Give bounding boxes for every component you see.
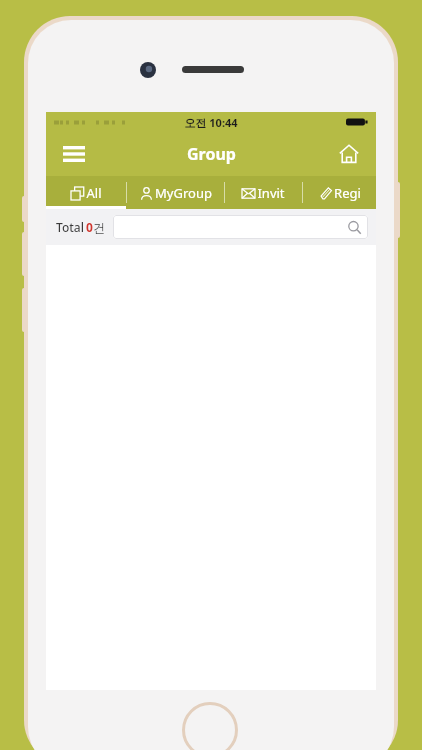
button[interactable]: MyGroup [127,176,224,209]
button[interactable]: Home [332,137,366,171]
staticText: 0 [86,219,93,235]
staticText: Group [187,143,236,165]
staticText: Invit [257,184,285,202]
staticText: MyGroup [155,184,212,202]
staticText: 오전 10:44 [184,115,238,130]
button[interactable]: Menu [56,136,92,172]
button[interactable]: Regi [303,176,376,209]
button[interactable]: Search [113,215,368,239]
staticText: Total [54,219,86,235]
staticText: All [86,184,102,202]
button[interactable]: Invit [225,176,302,209]
staticText: Regi [334,184,361,202]
button[interactable]: All [46,176,126,209]
staticText: 건 [93,220,105,235]
